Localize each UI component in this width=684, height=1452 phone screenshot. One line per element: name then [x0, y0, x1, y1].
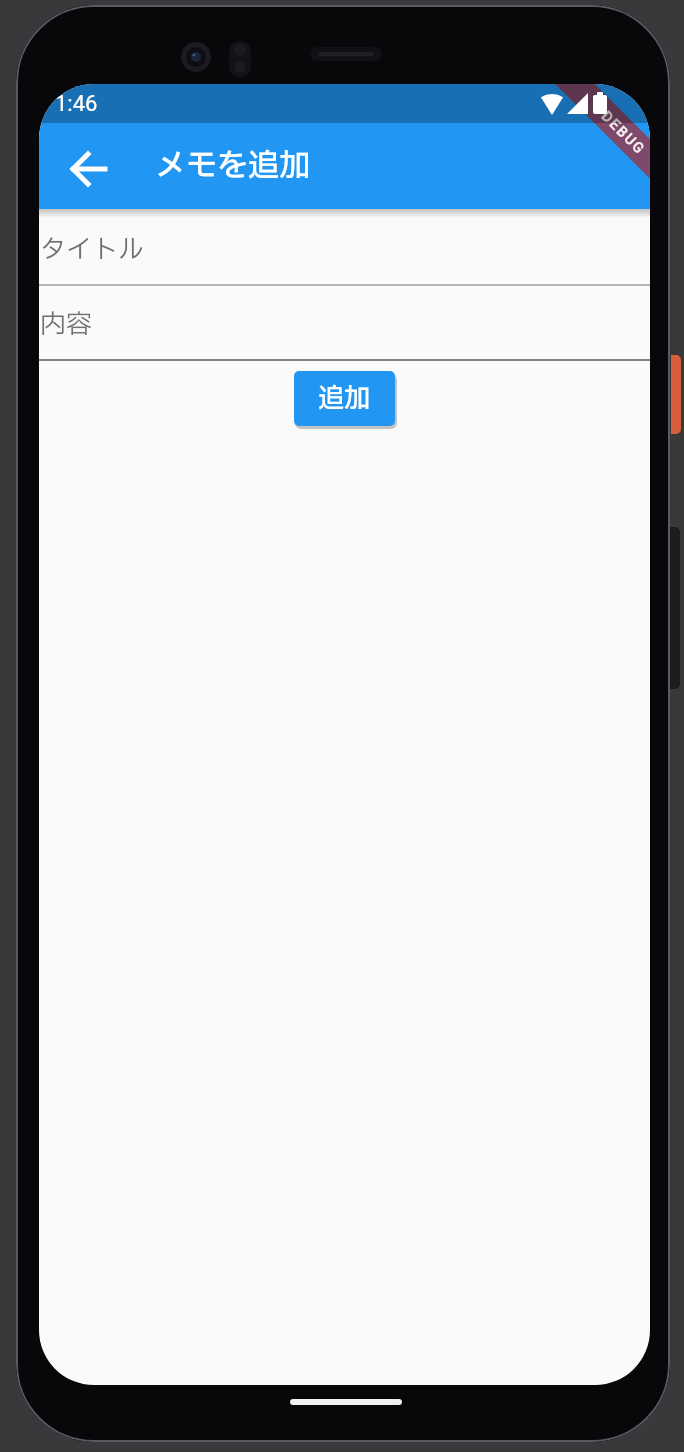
staticText: DEBUG [599, 108, 649, 158]
button[interactable]: 内容 [40, 305, 93, 344]
staticText: 追加 [318, 379, 371, 418]
button[interactable] [39, 123, 125, 209]
staticText: メモを追加 [155, 143, 310, 189]
button[interactable]: 追加 [294, 371, 395, 426]
button[interactable]: タイトル [40, 230, 145, 269]
staticText: 1:46 [55, 91, 98, 117]
